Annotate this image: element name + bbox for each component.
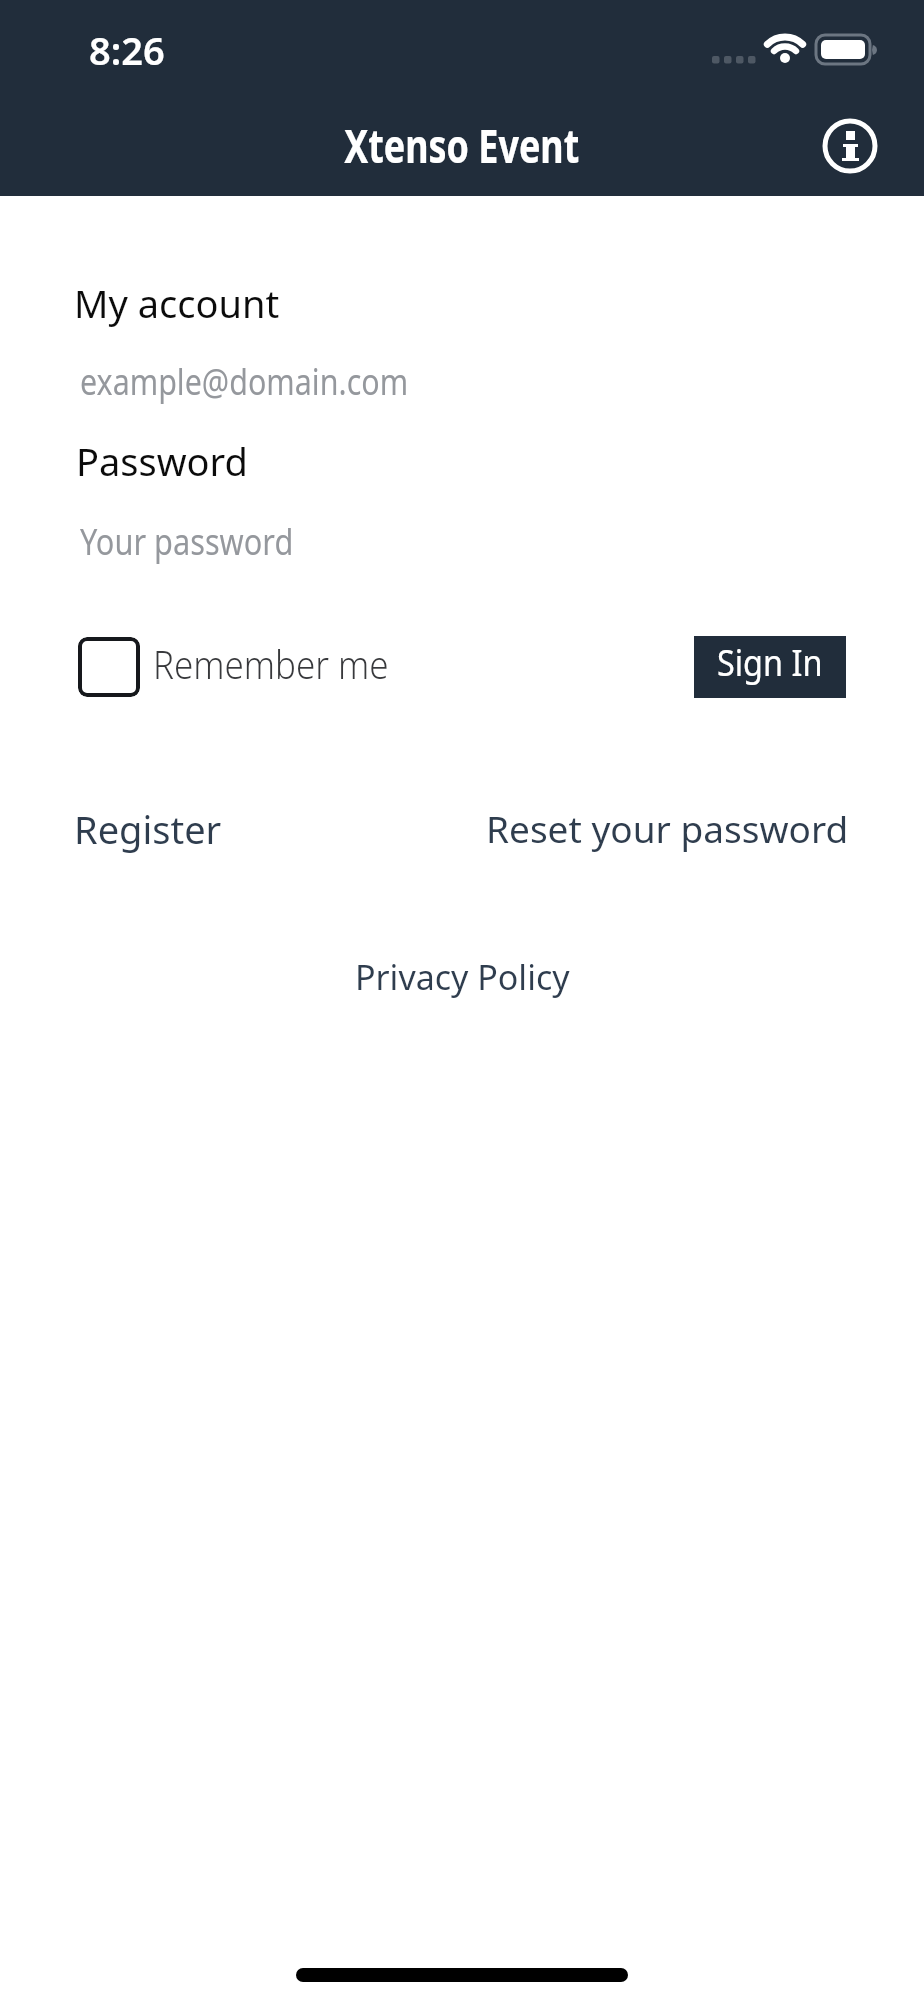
staticText: Xtenso Event xyxy=(344,114,580,177)
staticText: Password xyxy=(76,435,248,487)
button[interactable]: example@domain.com xyxy=(78,344,638,410)
button[interactable]: Sign In xyxy=(694,636,846,698)
staticText: My account xyxy=(74,277,280,329)
staticText: Remember me xyxy=(153,638,389,690)
button[interactable]: Your password xyxy=(78,504,638,570)
staticText: Privacy Policy xyxy=(355,954,570,1000)
staticText: Sign In xyxy=(717,638,823,687)
button[interactable]: Privacy Policy xyxy=(355,954,570,1000)
staticText: Reset your password xyxy=(486,803,849,853)
staticText: Register xyxy=(74,803,222,855)
staticText: Your password xyxy=(80,517,294,566)
button[interactable] xyxy=(820,116,880,176)
button[interactable]: Register xyxy=(74,803,222,855)
staticText: 8:26 xyxy=(89,24,165,76)
button[interactable] xyxy=(78,637,140,697)
staticText: example@domain.com xyxy=(80,357,409,406)
button[interactable]: Reset your password xyxy=(486,803,849,853)
